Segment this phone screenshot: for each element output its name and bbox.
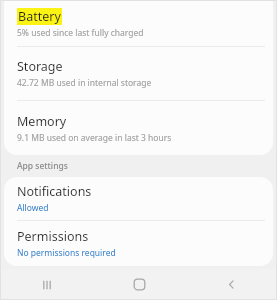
staticText: Permissions: [17, 228, 89, 245]
button[interactable]: Permissions: [4, 221, 273, 266]
button[interactable]: Recents: [16, 269, 78, 300]
staticText: App settings: [17, 160, 68, 172]
button[interactable]: Notifications: [4, 177, 273, 220]
button[interactable]: Home: [109, 269, 170, 300]
staticText: No permissions required: [17, 247, 116, 259]
staticText: Notifications: [17, 183, 92, 200]
button[interactable]: Memory: [4, 101, 273, 155]
button[interactable]: Back: [201, 269, 262, 300]
staticText: 42.72 MB used in internal storage: [17, 77, 152, 89]
staticText: 9.1 MB used on average in last 3 hours: [17, 132, 172, 144]
staticText: 5% used since last fully charged: [17, 27, 144, 39]
button[interactable]: Battery: [4, 0, 273, 46]
staticText: Memory: [17, 113, 67, 130]
staticText: Allowed: [17, 202, 49, 214]
staticText: Storage: [17, 58, 63, 75]
staticText: Battery: [18, 8, 61, 25]
button[interactable]: Storage: [4, 47, 273, 100]
